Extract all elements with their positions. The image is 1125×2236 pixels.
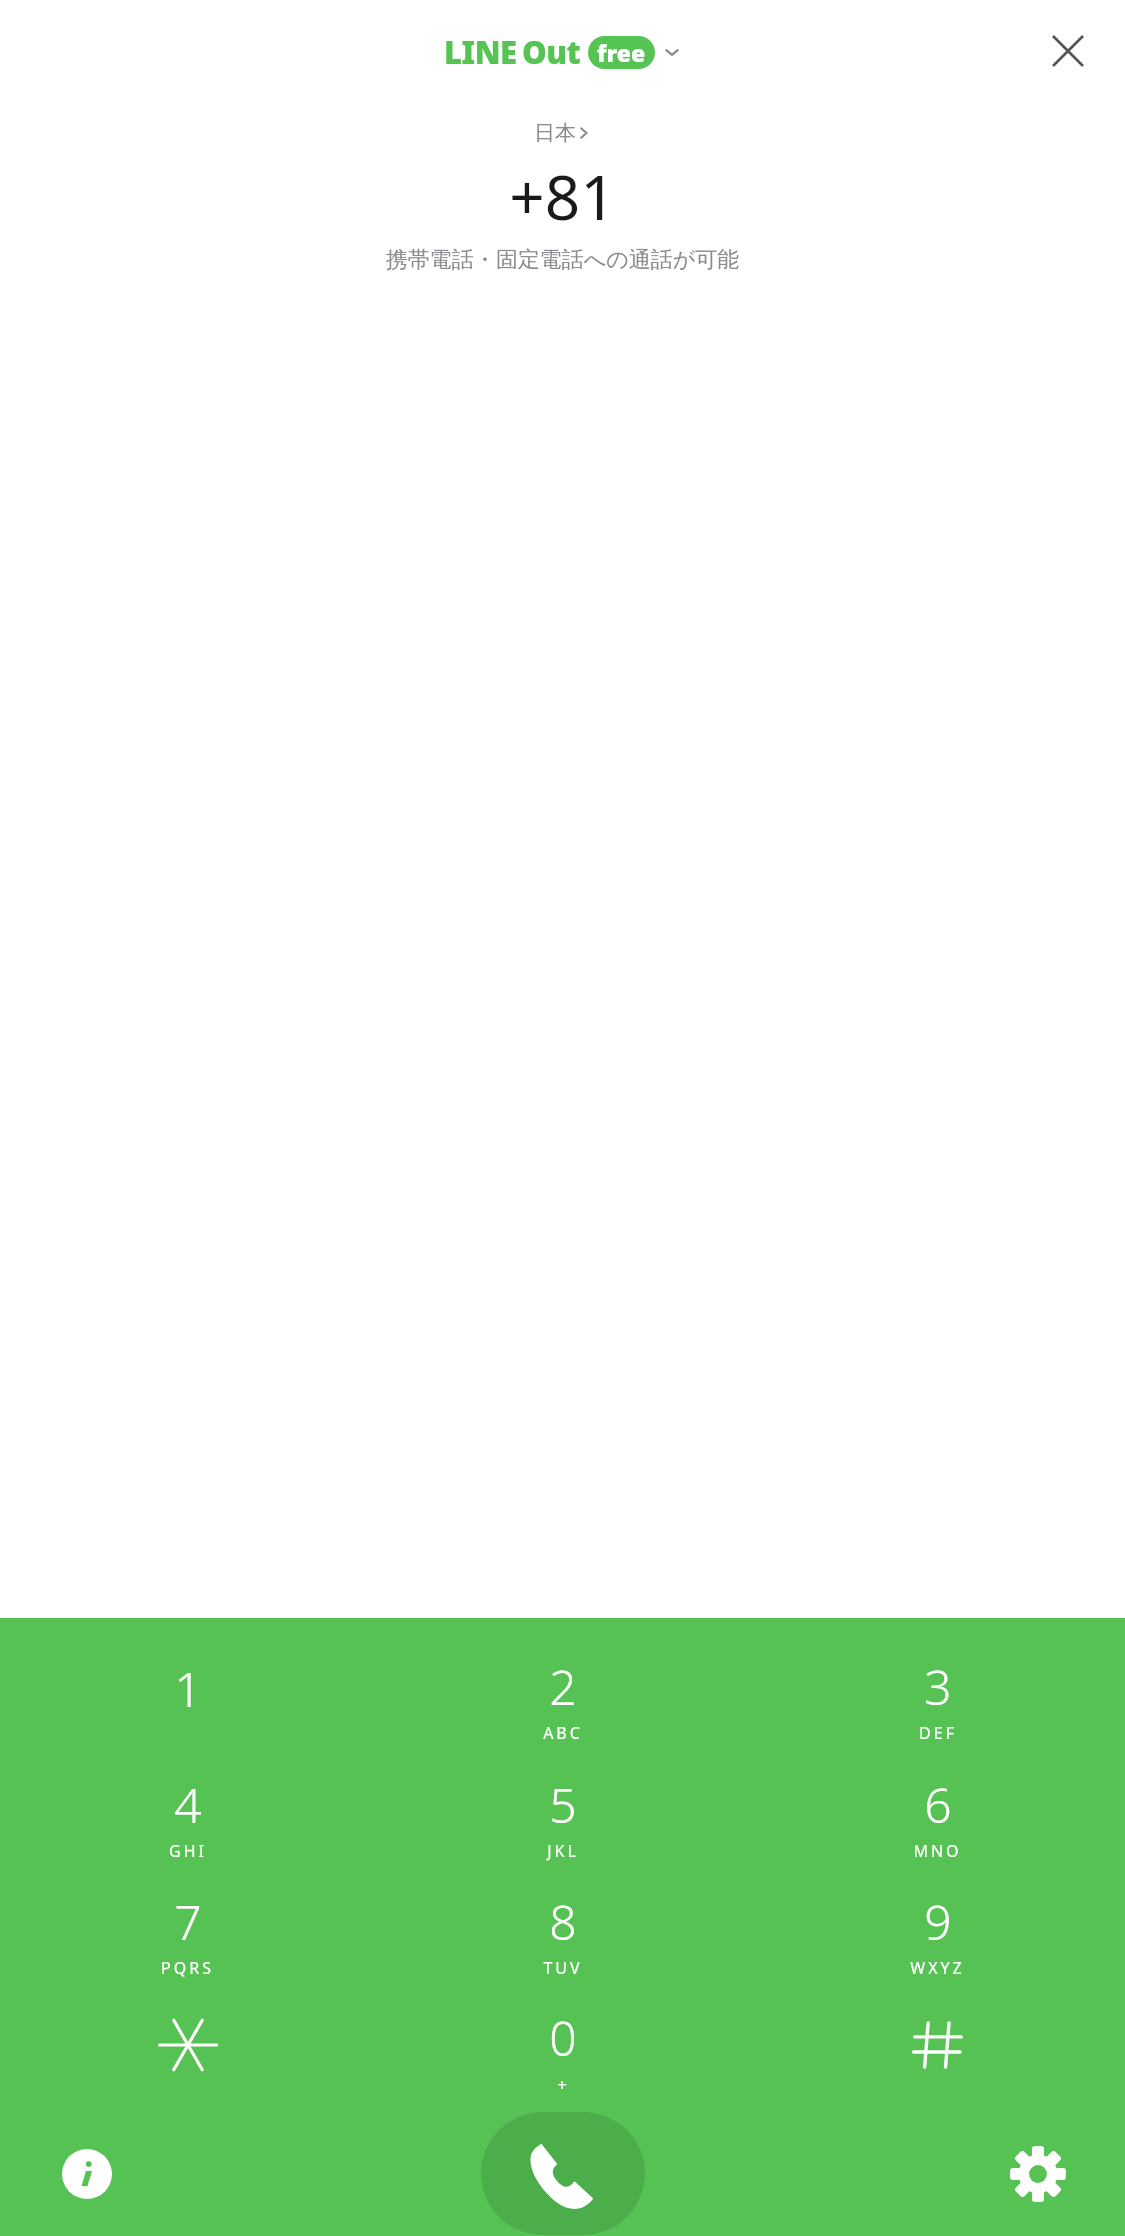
staticText: 9 [924, 1889, 952, 1954]
button[interactable]: 4 [0, 1762, 375, 1879]
staticText: 1 [174, 1656, 202, 1721]
staticText: DEF [919, 1722, 957, 1744]
button[interactable]: Call [481, 2112, 645, 2235]
staticText: MNO [913, 1840, 962, 1862]
staticText: 5 [549, 1772, 577, 1837]
button[interactable]: 9 [750, 1879, 1125, 1996]
staticText: TUV [543, 1957, 583, 1979]
button[interactable]: 7 [0, 1879, 375, 1996]
staticText: 3 [924, 1654, 952, 1719]
staticText: ABC [543, 1722, 583, 1744]
staticText: +81 [0, 154, 1125, 238]
button[interactable]: Settings [992, 2128, 1084, 2220]
staticText: GHI [169, 1840, 207, 1862]
staticText: PQRS [161, 1957, 214, 1979]
staticText: WXYZ [910, 1957, 965, 1979]
button[interactable]: 1 [0, 1644, 375, 1762]
button[interactable]: 8 [375, 1879, 750, 1996]
staticText: 携帯電話・固定電話への通話が可能 [0, 246, 1125, 274]
button[interactable]: 0 [375, 1996, 750, 2113]
staticText: LINE [444, 31, 517, 73]
staticText: + [557, 2073, 570, 2096]
button[interactable]: Pound [750, 1996, 1125, 2113]
button[interactable]: Star [0, 1996, 375, 2113]
staticText: 4 [174, 1772, 202, 1837]
staticText: 8 [549, 1889, 577, 1954]
staticText: 日本 [534, 120, 576, 146]
button[interactable]: 日本 [526, 118, 600, 148]
staticText: JKL [547, 1840, 579, 1862]
staticText: 6 [924, 1772, 952, 1837]
button[interactable]: 3 [750, 1644, 1125, 1762]
button[interactable]: 2 [375, 1644, 750, 1762]
button[interactable]: Information [41, 2128, 133, 2220]
button[interactable]: LINE [440, 27, 685, 77]
button[interactable]: 6 [750, 1762, 1125, 1879]
staticText: Out [522, 31, 581, 73]
button[interactable]: Close [1041, 24, 1095, 78]
staticText: 0 [549, 2005, 577, 2070]
staticText: 7 [174, 1889, 202, 1954]
staticText: 2 [549, 1654, 577, 1719]
staticText: free [597, 37, 646, 68]
button[interactable]: 5 [375, 1762, 750, 1879]
